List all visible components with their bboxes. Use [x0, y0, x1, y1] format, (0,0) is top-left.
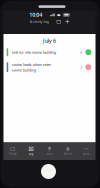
staticText: Activity log — [29, 19, 48, 24]
staticText: entries into swine building — [12, 49, 56, 55]
staticText: 4 — [80, 49, 82, 55]
staticText: 10:04 — [29, 11, 42, 18]
button[interactable]: Sites — [40, 142, 59, 160]
button[interactable]: Calendar — [56, 19, 61, 24]
staticText: Sites — [46, 152, 52, 156]
staticText: Today — [9, 152, 16, 156]
staticText: July 6 — [43, 37, 56, 44]
staticText: 2 — [80, 64, 82, 70]
button[interactable]: swine loads when enter — [3, 59, 95, 75]
staticText: More — [83, 152, 90, 156]
button[interactable]: More — [77, 142, 95, 160]
staticText: Log — [29, 152, 34, 156]
button[interactable]: entries into swine building — [3, 45, 95, 59]
staticText: swine building — [12, 67, 36, 73]
button[interactable]: Home — [41, 164, 56, 179]
staticText: Alerts — [64, 152, 72, 156]
button[interactable]: Today — [3, 142, 22, 160]
staticText: swine loads when enter — [12, 62, 52, 67]
button[interactable]: Activity log — [29, 19, 48, 24]
button[interactable]: Add entry — [61, 19, 69, 24]
button[interactable]: Log — [22, 142, 40, 160]
button[interactable]: Alerts — [59, 142, 77, 160]
